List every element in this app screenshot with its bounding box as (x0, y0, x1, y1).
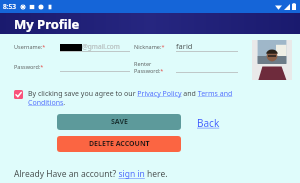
staticText: My Profile (14, 15, 80, 33)
button[interactable]: DELETE ACCOUNT (57, 136, 181, 152)
staticText: @gmail.com (82, 42, 120, 51)
staticText: By clicking save you agree to our Privac… (28, 89, 266, 107)
staticText: SAVE (111, 117, 128, 127)
button[interactable]: Back (197, 116, 220, 130)
button[interactable]: @gmail.com (60, 40, 130, 52)
button[interactable] (60, 60, 130, 72)
button[interactable]: Profile photo (252, 40, 292, 80)
staticText: DELETE ACCOUNT (89, 139, 150, 149)
button[interactable] (176, 61, 238, 73)
button[interactable]: SAVE (57, 114, 181, 130)
staticText: Back (197, 116, 220, 130)
staticText: farid (176, 41, 193, 51)
staticText: 8:53 (3, 2, 16, 11)
staticText: Username:* (14, 43, 46, 50)
button[interactable]: Already Have an account? sign in here. (14, 168, 168, 180)
staticText: Nickname:* (134, 43, 165, 50)
button[interactable]: By clicking save you agree to our Privac… (14, 89, 266, 107)
staticText: Password:* (14, 63, 44, 70)
staticText: Already Have an account? sign in here. (14, 168, 168, 180)
button[interactable]: farid (176, 40, 238, 52)
staticText: Renter Password:* (134, 60, 176, 74)
